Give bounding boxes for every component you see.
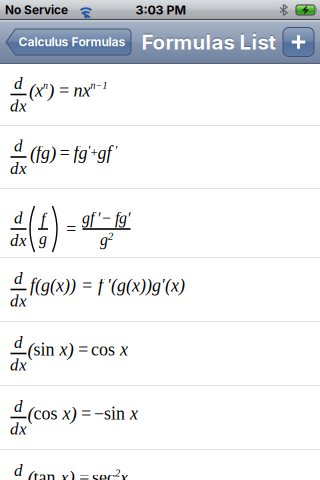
staticText: tan [33,467,60,480]
staticText: x [59,339,67,359]
staticText: x [60,467,68,480]
staticText: x [130,403,138,423]
staticText: n [43,80,48,91]
staticText: d [14,74,23,93]
button[interactable]: Back [6,29,131,55]
staticText: ( [29,80,35,101]
staticText: dx [10,419,27,438]
staticText: gf [97,143,111,163]
staticText: = [58,80,70,100]
staticText: g [39,230,47,248]
staticText: d [14,461,23,480]
staticText: −sin [94,403,130,423]
staticText: ) [70,403,76,424]
staticText: nx [73,80,90,100]
staticText: d [14,397,23,416]
button[interactable]: d [0,189,320,258]
staticText: x [35,80,43,100]
staticText: cos [91,339,120,359]
staticText: + [90,145,97,160]
button[interactable]: d [0,64,320,126]
staticText: cos [33,403,62,423]
staticText: = [80,403,92,423]
staticText: = [65,219,77,239]
staticText: (g(x)) = f ′(g(x))g′(x) [35,275,185,295]
button[interactable]: d [0,386,320,450]
staticText: 3:03 PM [135,2,186,17]
staticText: = [77,339,89,359]
staticText: d [14,208,23,227]
staticText: ( [30,142,36,163]
staticText: 2 [108,230,113,242]
staticText: dx [10,355,27,374]
staticText: d [14,333,23,352]
staticText: ) [48,80,54,101]
staticText: ( [27,467,33,480]
staticText: sin [33,339,59,359]
staticText: ) [50,142,56,163]
staticText: dx [10,231,27,250]
staticText: n−1 [90,80,107,91]
staticText: ′ [87,142,90,157]
staticText: ) [67,339,73,360]
staticText: No Service [5,3,68,17]
staticText: ( [27,403,33,424]
staticText: 2 [115,467,120,479]
staticText: dx [10,291,27,310]
staticText: fg [36,143,50,163]
staticText: f [30,275,35,295]
staticText: d [14,136,23,155]
staticText: ( [27,339,33,360]
staticText: Formulas List [141,29,276,53]
staticText: gf ′− fg′ [82,209,131,227]
staticText: fg [73,143,87,163]
staticText: dx [10,96,27,115]
staticText: g [100,231,108,249]
staticText: = [58,143,70,163]
staticText: Calculus Formulas [18,35,125,49]
staticText: x [62,403,70,423]
button[interactable]: d [0,450,320,480]
staticText: x [120,339,128,359]
button[interactable]: d [0,126,320,189]
button[interactable]: d [0,258,320,322]
staticText: sec [92,467,115,480]
button[interactable]: Add [283,27,314,56]
staticText: ′ [111,142,117,157]
staticText: dx [10,159,27,178]
staticText: Formulas List [141,30,276,54]
button[interactable]: d [0,322,320,386]
staticText: x [120,467,128,480]
staticText: d [14,269,23,288]
staticText: = [78,467,90,480]
staticText: ) [68,467,74,480]
staticText: f [41,210,45,228]
